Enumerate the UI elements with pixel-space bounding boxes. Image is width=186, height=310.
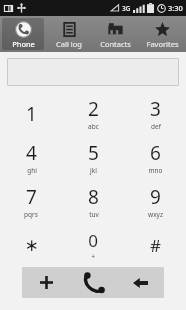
button[interactable]: 3 bbox=[124, 92, 186, 135]
staticText: 9 bbox=[150, 184, 161, 210]
staticText: ∗ bbox=[24, 235, 39, 255]
staticText: abc bbox=[88, 122, 99, 131]
button[interactable]: 4 bbox=[0, 135, 62, 179]
staticText: pqrs bbox=[24, 210, 38, 219]
staticText: 3 bbox=[150, 96, 161, 122]
staticText: Phone bbox=[12, 39, 35, 49]
button[interactable]: 8 bbox=[62, 179, 124, 223]
button[interactable]: 6 bbox=[124, 135, 186, 179]
button[interactable]: # bbox=[124, 223, 186, 267]
staticText: wxyz bbox=[148, 210, 163, 219]
button[interactable]: 7 bbox=[0, 179, 62, 223]
button[interactable] bbox=[7, 58, 179, 86]
staticText: + bbox=[91, 252, 95, 261]
button[interactable]: Call log bbox=[48, 18, 90, 50]
button[interactable]: 1 bbox=[0, 92, 62, 135]
staticText: # bbox=[150, 234, 161, 257]
button[interactable]: Backspace bbox=[117, 267, 164, 298]
staticText: 4 bbox=[26, 140, 37, 166]
staticText: 7 bbox=[26, 184, 37, 210]
staticText: ghi bbox=[27, 166, 37, 175]
staticText: 1 bbox=[26, 101, 37, 127]
staticText: Favorites bbox=[146, 39, 179, 49]
button[interactable]: Contacts bbox=[94, 18, 137, 50]
button[interactable]: 0 bbox=[62, 223, 124, 267]
staticText: 5 bbox=[88, 140, 99, 166]
staticText: def bbox=[151, 122, 161, 131]
staticText: 2 bbox=[88, 96, 99, 122]
staticText: Call log bbox=[56, 39, 82, 49]
button[interactable]: Add contact bbox=[22, 267, 70, 298]
button[interactable]: Favorites bbox=[141, 18, 184, 50]
staticText: tuv bbox=[89, 210, 99, 219]
staticText: 0 bbox=[88, 229, 98, 252]
staticText: mno bbox=[148, 166, 163, 175]
button[interactable]: 9 bbox=[124, 179, 186, 223]
button[interactable]: ∗ bbox=[0, 223, 62, 267]
staticText: Contacts bbox=[100, 39, 131, 49]
staticText: 6 bbox=[150, 140, 161, 166]
staticText: 3G bbox=[122, 4, 131, 13]
button[interactable]: 5 bbox=[62, 135, 124, 179]
button[interactable]: Call bbox=[70, 267, 117, 298]
staticText: 3:30 bbox=[168, 3, 183, 13]
button[interactable]: 2 bbox=[62, 92, 124, 135]
staticText: 8 bbox=[88, 184, 99, 210]
button[interactable]: Phone bbox=[2, 18, 44, 50]
staticText: jkl bbox=[90, 166, 97, 175]
